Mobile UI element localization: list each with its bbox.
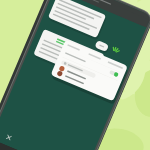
button[interactable]: WhatsApp chat promo — [0, 0, 150, 150]
